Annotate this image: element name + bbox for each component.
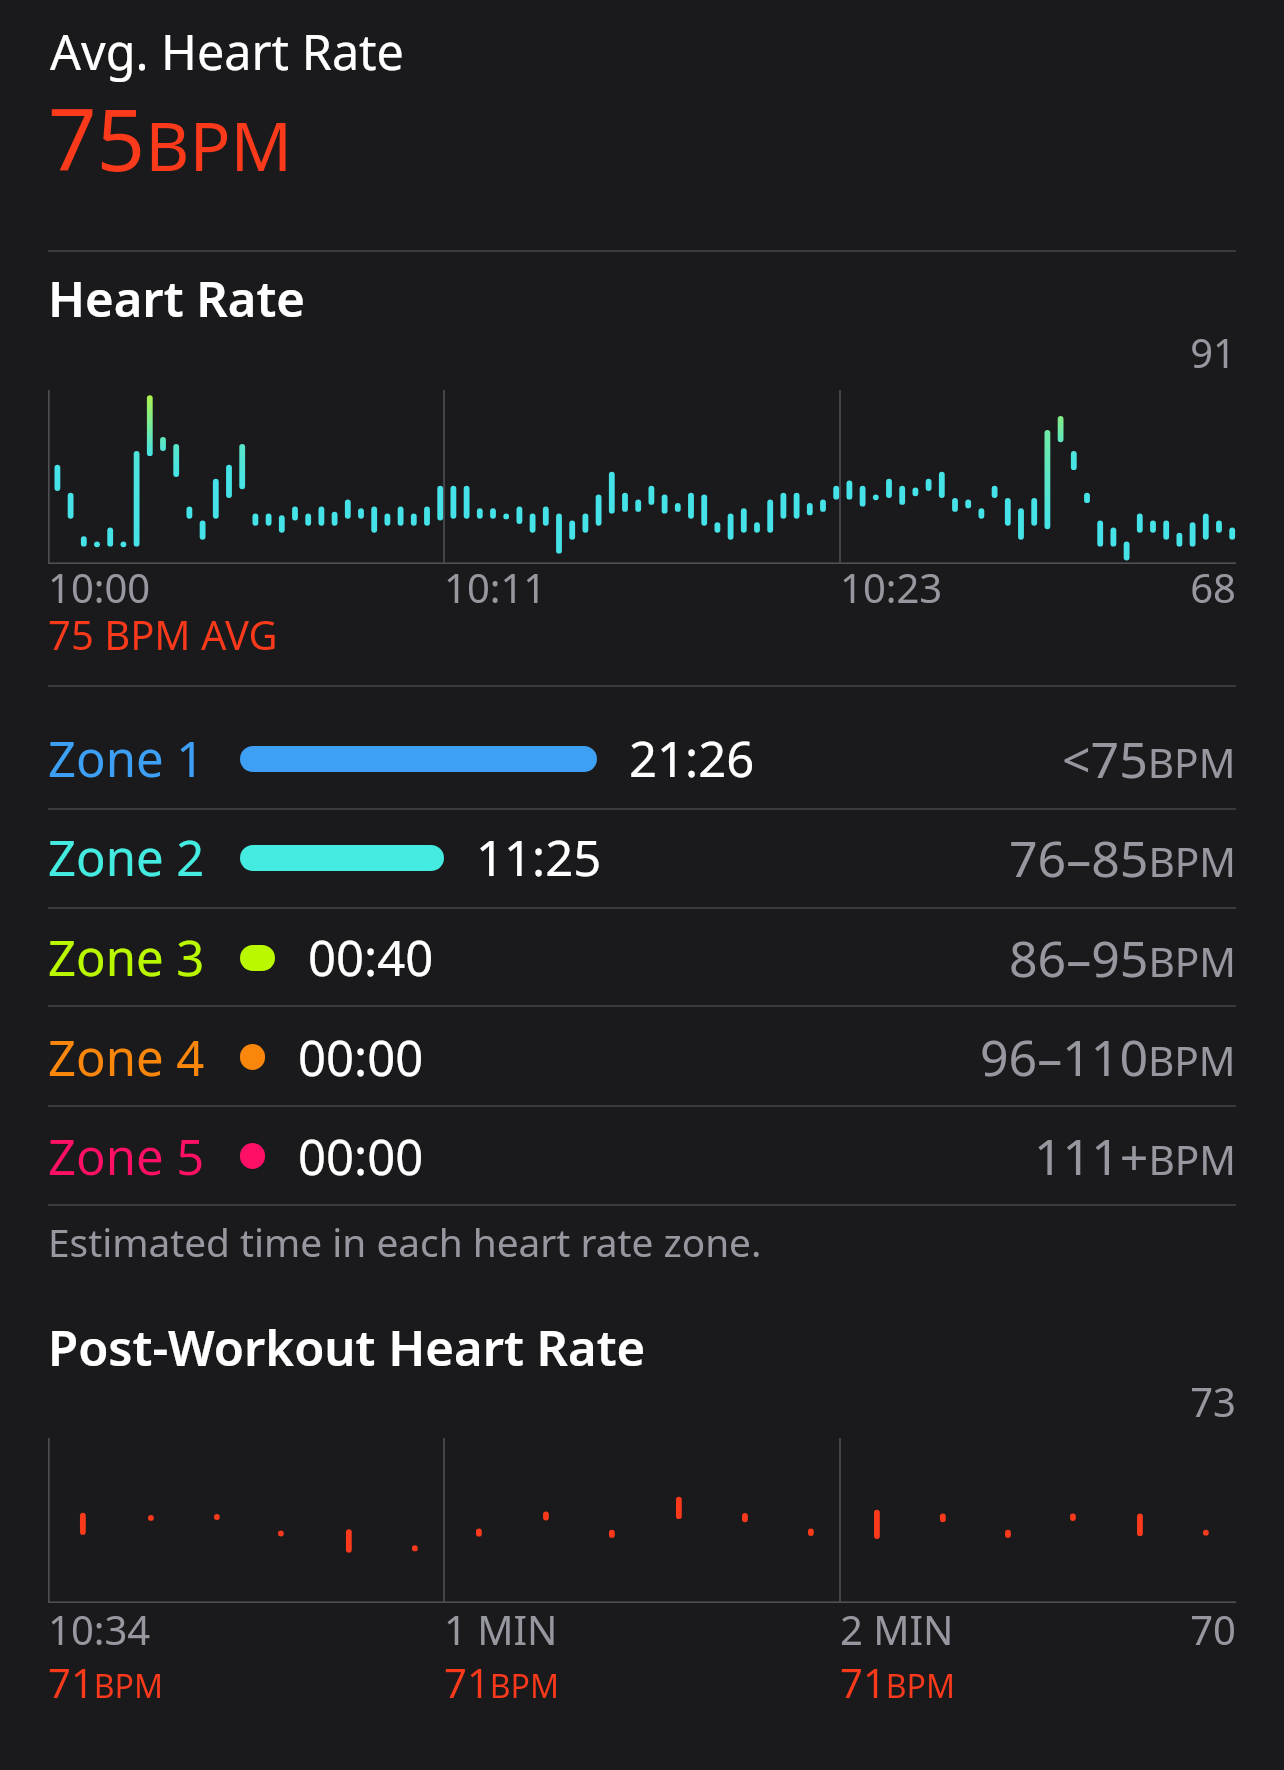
staticText: 70 <box>48 1602 1236 1656</box>
staticText: 2 MIN <box>840 1602 954 1656</box>
staticText: 21:26 <box>629 725 755 792</box>
staticText: Zone 1 <box>48 725 205 792</box>
staticText: 1 MIN <box>444 1602 558 1656</box>
staticText: 10:34 <box>48 1602 151 1656</box>
staticText: 10:11 <box>444 560 547 614</box>
button[interactable]: Zone 1 <box>48 709 1236 808</box>
staticText: <75BPM <box>1062 725 1236 793</box>
staticText: 75BPM <box>48 80 293 196</box>
staticText: 10:23 <box>840 560 943 614</box>
staticText: 75 BPM AVG <box>48 607 278 661</box>
staticText: Estimated time in each heart rate zone. <box>48 1216 762 1269</box>
staticText: 00:00 <box>298 1123 424 1190</box>
staticText: 96–110BPM <box>980 1023 1236 1091</box>
button[interactable]: Post-workout heart rate chart, 70 to 73 … <box>48 1438 1236 1603</box>
button[interactable]: Zone 3 <box>48 907 1236 1008</box>
button[interactable]: Zone 2 <box>48 808 1236 907</box>
staticText: 91 <box>48 325 1236 379</box>
staticText: 76–85BPM <box>1009 824 1236 892</box>
staticText: Zone 4 <box>48 1024 205 1091</box>
staticText: 71BPM <box>840 1655 955 1709</box>
staticText: 11:25 <box>476 824 602 891</box>
staticText: 111+BPM <box>1034 1122 1236 1190</box>
staticText: 73 <box>48 1374 1236 1428</box>
staticText: Post-Workout Heart Rate <box>48 1314 646 1381</box>
button[interactable]: Zone 5 <box>48 1105 1236 1207</box>
staticText: 10:00 <box>48 560 151 614</box>
staticText: 86–95BPM <box>1009 924 1236 992</box>
staticText: 00:00 <box>298 1024 424 1091</box>
staticText: Avg. Heart Rate <box>50 18 404 84</box>
button[interactable]: Heart rate chart, 68 to 91 BPM <box>48 390 1236 564</box>
staticText: Zone 5 <box>48 1123 205 1190</box>
staticText: Zone 2 <box>48 824 205 891</box>
staticText: 71BPM <box>48 1655 163 1709</box>
staticText: Zone 3 <box>48 924 205 991</box>
staticText: 71BPM <box>444 1655 559 1709</box>
staticText: Heart Rate <box>48 265 306 332</box>
staticText: 68 <box>48 560 1236 614</box>
staticText: 00:40 <box>308 924 434 991</box>
button[interactable]: Zone 4 <box>48 1005 1236 1109</box>
